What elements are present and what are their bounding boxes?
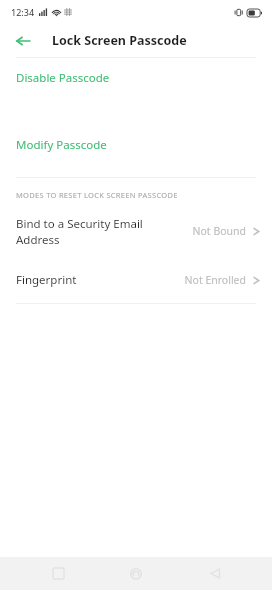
button[interactable]: Fingerprint bbox=[0, 257, 272, 303]
staticText: MODES TO RESET LOCK SCREEN PASSCODE bbox=[16, 190, 178, 200]
button[interactable]: Home bbox=[115, 557, 157, 590]
staticText: Bind to a Security Email Address bbox=[16, 216, 192, 247]
staticText: Fingerprint bbox=[16, 272, 184, 288]
staticText: Lock Screen Passcode bbox=[52, 32, 187, 49]
button[interactable]: Back bbox=[9, 27, 36, 54]
staticText: Disable Passcode bbox=[16, 70, 110, 86]
staticText: Modify Passcode bbox=[16, 137, 107, 153]
staticText: Not Bound bbox=[192, 224, 246, 238]
button[interactable]: Disable Passcode bbox=[0, 58, 272, 97]
button[interactable]: Modify Passcode bbox=[0, 125, 272, 164]
staticText: 12:34 bbox=[11, 6, 35, 18]
staticText: Not Enrolled bbox=[184, 273, 246, 287]
button[interactable]: Bind to a Security Email Address bbox=[0, 205, 272, 257]
